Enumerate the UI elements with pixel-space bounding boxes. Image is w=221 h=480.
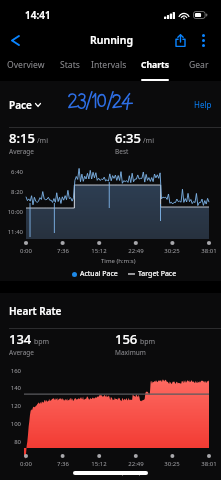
staticText: 6:40 — [0, 168, 23, 176]
staticText: /mi — [37, 136, 48, 146]
button[interactable]: Charts — [133, 58, 177, 81]
button[interactable]: Pace — [0, 94, 47, 116]
staticText: 15:12 — [88, 247, 110, 255]
staticText: 22:49 — [125, 460, 147, 468]
staticText: Pace — [9, 98, 32, 112]
staticText: 160 — [0, 367, 21, 375]
staticText: Running — [90, 33, 134, 47]
staticText: Best — [115, 147, 129, 156]
staticText: 10:00 — [0, 208, 23, 216]
staticText: 0:00 — [15, 460, 37, 468]
staticText: Time (h:m:s) — [101, 257, 136, 265]
staticText: 6:35 — [115, 129, 141, 147]
staticText: bpm — [34, 337, 50, 347]
staticText: Overview — [7, 59, 45, 71]
button[interactable]: Stats — [51, 58, 89, 81]
button[interactable]: Overview — [0, 58, 51, 81]
staticText: 80 — [0, 438, 21, 446]
staticText: 7:36 — [52, 247, 74, 255]
staticText: 8:15 — [9, 129, 35, 147]
button[interactable]: Back — [1, 28, 29, 52]
staticText: Gear — [189, 59, 209, 71]
staticText: Average — [9, 348, 34, 357]
staticText: 100 — [0, 420, 21, 428]
staticText: 8:20 — [0, 188, 23, 196]
staticText: 0:00 — [15, 247, 37, 255]
staticText: 38:01 — [198, 247, 220, 255]
button[interactable]: More options — [194, 28, 213, 52]
staticText: Target Pace — [138, 269, 177, 279]
staticText: 7:36 — [52, 460, 74, 468]
staticText: Time (h:m:s) — [106, 469, 141, 477]
button[interactable]: Intervals — [86, 58, 131, 81]
staticText: 30:25 — [161, 460, 183, 468]
staticText: Actual Pace — [80, 269, 118, 279]
staticText: 11:40 — [0, 228, 23, 236]
staticText: 156 — [115, 330, 138, 348]
button[interactable]: Help — [194, 95, 221, 114]
staticText: /mi — [143, 136, 154, 146]
staticText: Stats — [60, 59, 80, 71]
staticText: Intervals — [91, 59, 127, 71]
staticText: Heart Rate — [9, 304, 62, 318]
staticText: 15:12 — [88, 460, 110, 468]
staticText: Maximum — [115, 348, 146, 357]
staticText: bpm — [140, 337, 156, 347]
staticText: 30:25 — [161, 247, 183, 255]
button[interactable]: Gear — [177, 58, 220, 81]
staticText: 134 — [9, 330, 32, 348]
staticText: 22:49 — [125, 247, 147, 255]
staticText: Average — [9, 147, 34, 156]
staticText: 38:01 — [198, 460, 220, 468]
staticText: 140 — [0, 384, 21, 392]
staticText: 120 — [0, 402, 21, 410]
button[interactable]: Share — [168, 28, 192, 52]
staticText: Charts — [141, 59, 170, 71]
staticText: 14:41 — [25, 8, 51, 22]
